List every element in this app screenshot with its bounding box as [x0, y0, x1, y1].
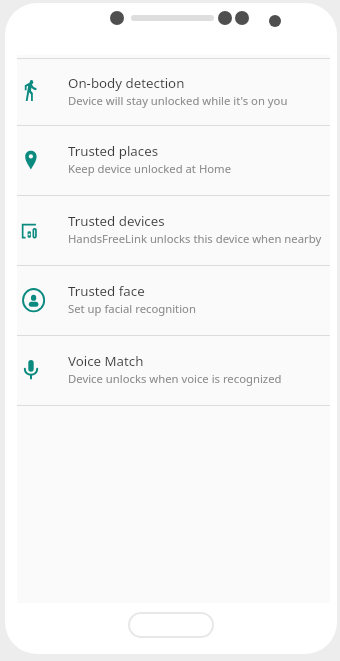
button[interactable]: Home: [129, 613, 213, 637]
button[interactable]: Trusted face: [17, 266, 330, 335]
button[interactable]: On-body detection: [17, 59, 330, 125]
button[interactable]: Voice Match: [17, 336, 330, 405]
staticText: Trusted places: [68, 142, 159, 160]
staticText: Device will stay unlocked while it's on …: [68, 93, 288, 108]
staticText: On-body detection: [68, 74, 185, 92]
staticText: Voice Match: [68, 352, 144, 370]
button[interactable]: Trusted places: [17, 126, 330, 195]
staticText: Keep device unlocked at Home: [68, 161, 232, 176]
button[interactable]: Trusted devices: [17, 196, 330, 265]
staticText: Device unlocks when voice is recognized: [68, 371, 282, 386]
staticText: Trusted face: [68, 282, 145, 300]
staticText: Set up facial recognition: [68, 301, 196, 316]
staticText: HandsFreeLink unlocks this device when n…: [68, 231, 322, 246]
staticText: Trusted devices: [68, 212, 165, 230]
